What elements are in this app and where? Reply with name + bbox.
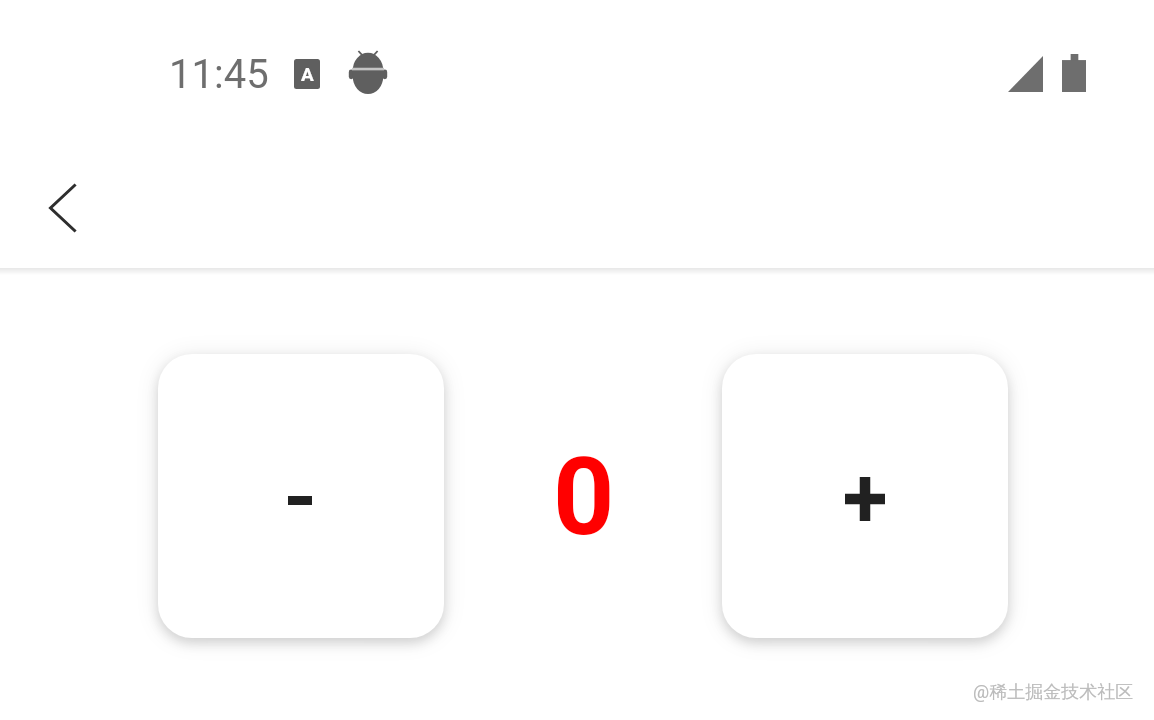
staticText: 11:45 [169,51,269,98]
button[interactable]: Decrement [158,354,444,638]
staticText: A [301,63,314,85]
staticText: @稀土掘金技术社区 [973,681,1134,704]
button[interactable]: Increment [722,354,1008,638]
button[interactable]: Back [24,170,100,246]
other: Signal strength [1008,56,1043,92]
other: Battery [1062,54,1086,92]
staticText: 0 [553,435,615,560]
